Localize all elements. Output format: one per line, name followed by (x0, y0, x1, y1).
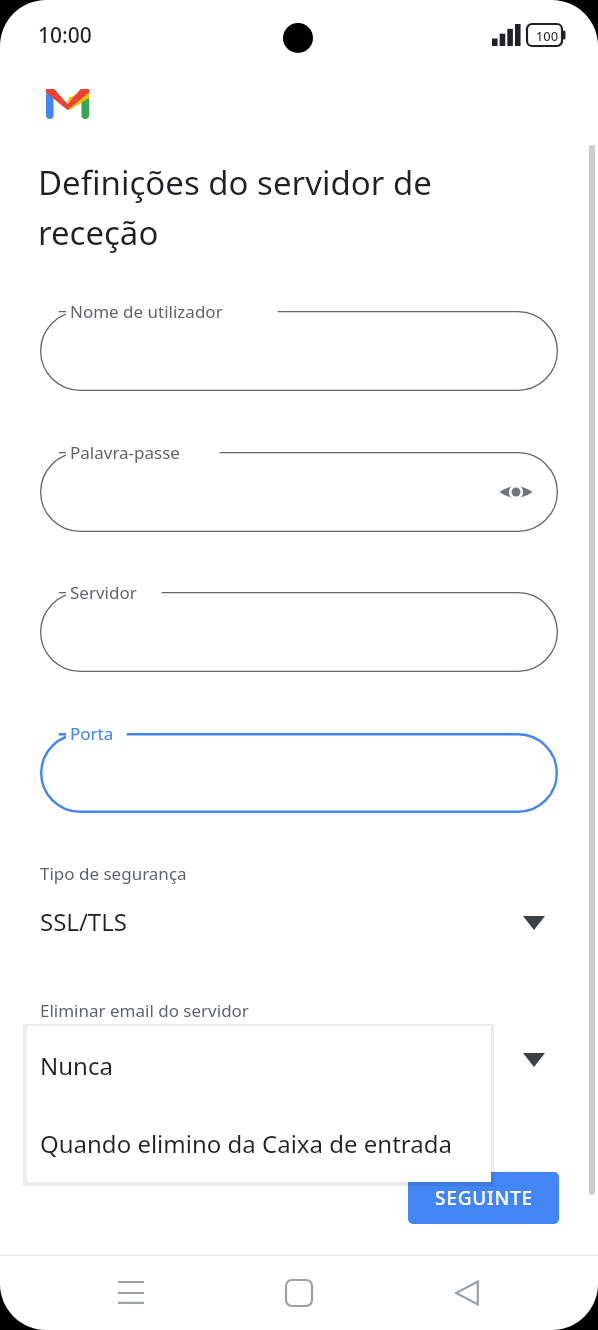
button[interactable]: Recentes (94, 1256, 168, 1330)
other: Gmail (46, 89, 89, 119)
button[interactable]: Quando elimino da Caixa de entrada (27, 1104, 491, 1182)
staticText: Nome de utilizador (70, 300, 223, 323)
button[interactable]: Anterior (430, 1256, 504, 1330)
button[interactable]: Nunca (34, 1034, 554, 1086)
staticText: Eliminar email do servidor (40, 999, 249, 1022)
button[interactable]: SSL/TLS (34, 897, 554, 949)
button[interactable] (40, 452, 558, 532)
staticText: Nunca (40, 1042, 113, 1075)
staticText: Quando elimino da Caixa de entrada (40, 1127, 452, 1160)
button[interactable]: Mostrar palavra-passe (492, 468, 540, 516)
staticText: SSL/TLS (40, 905, 127, 938)
button[interactable]: SEGUINTE (408, 1172, 559, 1224)
staticText: SEGUINTE (435, 1185, 533, 1211)
button[interactable] (40, 592, 558, 672)
staticText: 10:00 (38, 21, 92, 50)
staticText: 100 (531, 27, 563, 45)
staticText: Tipo de segurança (40, 862, 187, 885)
staticText: Nunca (40, 1049, 113, 1082)
button[interactable] (40, 311, 558, 391)
staticText: Definições do servidor de receção (38, 160, 558, 255)
staticText: Porta (70, 722, 114, 745)
staticText: Servidor (70, 581, 137, 604)
button[interactable] (40, 733, 558, 813)
button[interactable]: Nunca (27, 1026, 491, 1104)
button[interactable]: Início (262, 1256, 336, 1330)
staticText: Palavra-passe (70, 441, 180, 464)
